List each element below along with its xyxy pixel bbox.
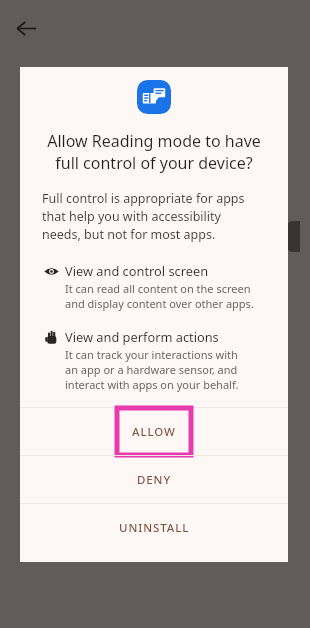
staticText: Allow Reading mode to have full control … [34,130,274,174]
staticText: View and control screen [65,262,209,279]
staticText: It can track your interactions with an a… [65,347,239,392]
button[interactable]: UNINSTALL [20,504,288,552]
staticText: ALLOW [132,424,176,440]
button[interactable]: Back [9,11,43,45]
button[interactable]: ALLOW [20,408,288,455]
staticText: View and perform actions [65,328,219,345]
staticText: Full control is appropriate for apps tha… [42,190,274,242]
staticText: UNINSTALL [119,520,190,536]
staticText: DENY [137,472,172,488]
staticText: It can read all content on the screen an… [65,281,254,311]
button[interactable]: DENY [20,456,288,503]
